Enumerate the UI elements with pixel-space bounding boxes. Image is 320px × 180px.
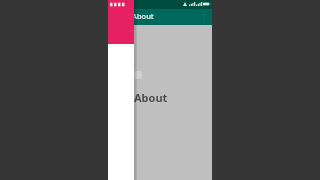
staticText: About xyxy=(132,11,154,21)
staticText: About xyxy=(134,90,168,105)
button[interactable] xyxy=(108,0,134,180)
